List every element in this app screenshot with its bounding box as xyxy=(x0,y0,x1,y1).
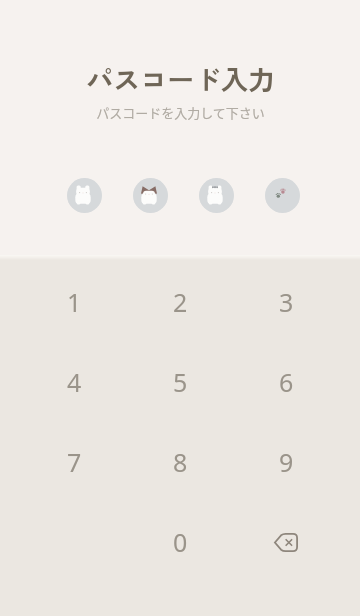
staticText: パスコード入力 xyxy=(86,59,275,98)
staticText: 8 xyxy=(173,445,188,479)
staticText: 0 xyxy=(173,525,188,559)
staticText: 9 xyxy=(279,445,294,479)
staticText: 2 xyxy=(173,285,188,319)
button[interactable]: 7 xyxy=(21,422,127,502)
button[interactable]: 4 xyxy=(21,342,127,422)
button[interactable]: 9 xyxy=(233,422,339,502)
staticText: 4 xyxy=(67,365,82,399)
button[interactable]: Passcode dot 1 xyxy=(67,178,102,213)
button[interactable]: Passcode dot 4 xyxy=(265,178,300,213)
staticText: 7 xyxy=(67,445,82,479)
staticText: 6 xyxy=(279,365,294,399)
button[interactable]: Passcode dot 3 xyxy=(199,178,234,213)
button[interactable]: 1 xyxy=(21,262,127,342)
button[interactable]: Delete xyxy=(233,502,339,582)
staticText: 5 xyxy=(173,365,188,399)
staticText: パスコードを入力して下さい xyxy=(96,103,265,122)
button[interactable]: 6 xyxy=(233,342,339,422)
other: Delete xyxy=(274,533,298,552)
button[interactable]: 2 xyxy=(127,262,233,342)
button[interactable]: 3 xyxy=(233,262,339,342)
button[interactable]: 5 xyxy=(127,342,233,422)
button[interactable]: 0 xyxy=(127,502,233,582)
button[interactable]: Passcode dot 2 xyxy=(133,178,168,213)
staticText: 3 xyxy=(279,285,294,319)
button[interactable]: 8 xyxy=(127,422,233,502)
staticText: 1 xyxy=(67,285,82,319)
